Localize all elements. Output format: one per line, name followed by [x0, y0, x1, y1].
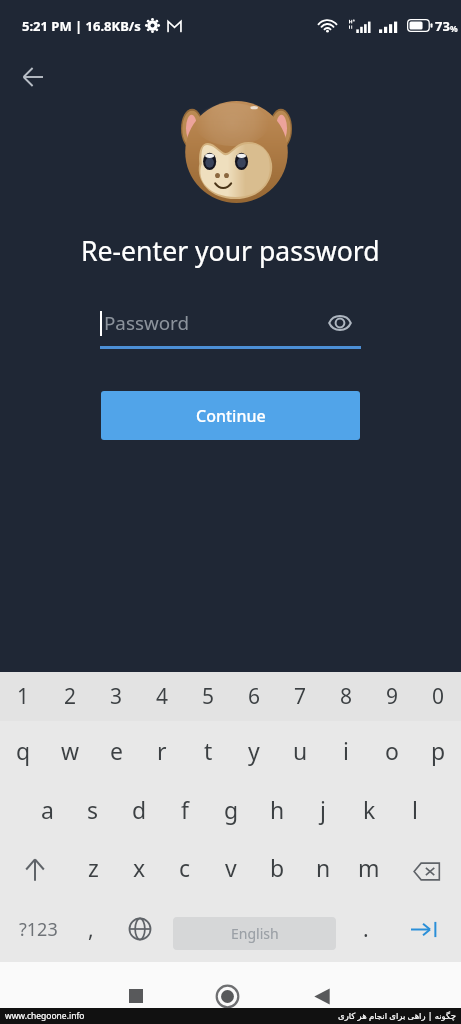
- button[interactable]: 2: [47, 672, 93, 721]
- button[interactable]: 6: [231, 672, 277, 721]
- staticText: Continue: [196, 405, 266, 427]
- button[interactable]: Recents: [112, 972, 160, 1020]
- staticText: k: [363, 794, 376, 825]
- button[interactable]: y: [231, 721, 277, 779]
- button[interactable]: e: [93, 721, 139, 779]
- staticText: v: [225, 852, 237, 883]
- button[interactable]: 3: [93, 672, 139, 721]
- button[interactable]: n: [300, 839, 346, 896]
- button[interactable]: i: [323, 721, 369, 779]
- staticText: x: [133, 852, 146, 883]
- staticText: d: [132, 794, 147, 825]
- button[interactable]: Next: [396, 896, 461, 962]
- staticText: j: [320, 794, 326, 825]
- button[interactable]: p: [415, 721, 461, 779]
- button[interactable]: Back: [10, 58, 56, 96]
- button[interactable]: 9: [369, 672, 415, 721]
- staticText: n: [316, 852, 331, 883]
- staticText: o: [385, 735, 399, 766]
- button[interactable]: b: [254, 839, 300, 896]
- button[interactable]: f: [162, 779, 208, 839]
- staticText: 73: [435, 17, 450, 35]
- button[interactable]: w: [47, 721, 93, 779]
- button[interactable]: z: [70, 839, 116, 896]
- button[interactable]: Continue: [101, 391, 360, 440]
- button[interactable]: g: [208, 779, 254, 839]
- button[interactable]: m: [346, 839, 392, 896]
- staticText: r: [157, 735, 167, 766]
- staticText: 6: [248, 682, 261, 711]
- staticText: 7: [294, 682, 307, 711]
- staticText: English: [231, 924, 279, 943]
- staticText: 4: [156, 682, 169, 711]
- button[interactable]: s: [70, 779, 116, 839]
- button[interactable]: k: [346, 779, 392, 839]
- staticText: 5:21 PM | 16.8KB/s: [22, 17, 141, 35]
- button[interactable]: 7: [277, 672, 323, 721]
- button[interactable]: q: [0, 721, 47, 779]
- button[interactable]: t: [185, 721, 231, 779]
- button[interactable]: 0: [415, 672, 461, 721]
- staticText: ?123: [19, 917, 58, 942]
- button[interactable]: o: [369, 721, 415, 779]
- staticText: چگونه | راهی برای انجام هر کاری: [338, 1010, 456, 1022]
- button[interactable]: 4: [139, 672, 185, 721]
- staticText: m: [358, 852, 380, 883]
- button[interactable]: 5: [185, 672, 231, 721]
- staticText: s: [87, 794, 99, 825]
- staticText: b: [270, 852, 285, 883]
- staticText: %: [450, 23, 458, 35]
- staticText: p: [431, 735, 446, 766]
- button[interactable]: English: [173, 917, 336, 950]
- button[interactable]: h: [254, 779, 300, 839]
- staticText: 0: [432, 682, 445, 711]
- staticText: z: [88, 852, 99, 883]
- staticText: f: [181, 794, 189, 825]
- staticText: w: [61, 735, 80, 766]
- staticText: u: [293, 735, 308, 766]
- staticText: q: [16, 735, 31, 766]
- button[interactable]: Home: [203, 972, 251, 1020]
- button[interactable]: a: [24, 779, 70, 839]
- staticText: i: [343, 735, 349, 766]
- staticText: y: [248, 735, 260, 766]
- staticText: a: [41, 794, 54, 825]
- staticText: .: [363, 915, 369, 944]
- staticText: Password: [104, 310, 190, 336]
- button[interactable]: Backspace: [392, 839, 461, 896]
- button[interactable]: r: [139, 721, 185, 779]
- button[interactable]: 1: [0, 672, 47, 721]
- button[interactable]: Change language: [106, 896, 173, 962]
- staticText: 9: [386, 682, 399, 711]
- staticText: 5: [202, 682, 215, 711]
- button[interactable]: .: [336, 896, 396, 962]
- staticText: e: [110, 735, 123, 766]
- button[interactable]: d: [116, 779, 162, 839]
- staticText: 8: [340, 682, 353, 711]
- staticText: 3: [110, 682, 123, 711]
- button[interactable]: j: [300, 779, 346, 839]
- staticText: ,: [88, 915, 94, 944]
- staticText: h: [270, 794, 285, 825]
- button[interactable]: Back: [298, 972, 346, 1020]
- staticText: t: [204, 735, 213, 766]
- button[interactable]: 8: [323, 672, 369, 721]
- button[interactable]: Show password: [323, 308, 357, 338]
- button[interactable]: ,: [76, 896, 106, 962]
- staticText: 1: [17, 682, 30, 711]
- button[interactable]: x: [116, 839, 162, 896]
- staticText: www.chegoone.info: [5, 1010, 85, 1022]
- staticText: l: [412, 794, 418, 825]
- button[interactable]: l: [392, 779, 438, 839]
- button[interactable]: v: [208, 839, 254, 896]
- button[interactable]: ?123: [0, 896, 76, 962]
- staticText: c: [179, 852, 191, 883]
- staticText: 2: [64, 682, 77, 711]
- staticText: Re-enter your password: [81, 233, 380, 269]
- button[interactable]: Shift: [0, 839, 70, 896]
- button[interactable]: c: [162, 839, 208, 896]
- staticText: g: [224, 794, 239, 825]
- button[interactable]: u: [277, 721, 323, 779]
